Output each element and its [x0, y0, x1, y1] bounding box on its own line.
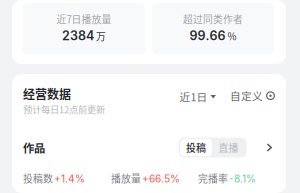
- staticText: 超过同类作者: [183, 12, 243, 26]
- staticText: 近1日: [179, 89, 207, 104]
- staticText: +66.5%: [142, 173, 180, 185]
- staticText: 作品: [23, 139, 45, 156]
- button[interactable]: 直播: [212, 139, 245, 156]
- button[interactable]: More: [247, 143, 275, 152]
- button[interactable]: 自定义: [216, 85, 275, 103]
- staticText: %: [227, 29, 236, 43]
- staticText: 近7日播放量: [56, 12, 111, 26]
- button[interactable]: 近1日: [179, 85, 216, 104]
- staticText: 预计每日12点前更新: [23, 102, 105, 116]
- staticText: 万: [96, 29, 106, 43]
- staticText: 投稿: [186, 140, 206, 155]
- staticText: 经营数据: [23, 85, 71, 102]
- staticText: +1.4%: [54, 173, 85, 185]
- button[interactable]: 投稿: [180, 139, 212, 156]
- staticText: 播放量: [111, 171, 141, 185]
- staticText: 完播率: [198, 171, 228, 185]
- staticText: -8.1%: [229, 173, 256, 185]
- staticText: 自定义: [230, 88, 263, 103]
- staticText: 直播: [219, 140, 239, 155]
- staticText: 投稿数: [23, 171, 53, 185]
- staticText: 2384: [62, 28, 94, 43]
- staticText: 99.66: [189, 28, 225, 43]
